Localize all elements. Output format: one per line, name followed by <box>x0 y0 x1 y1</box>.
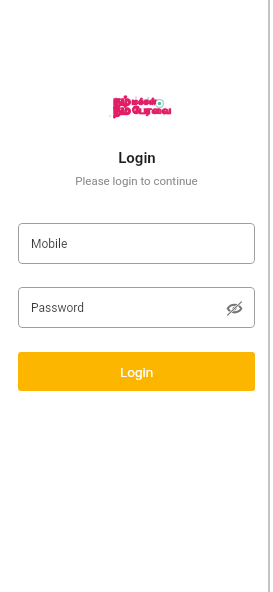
staticText: Login <box>120 364 154 380</box>
staticText: நம் <box>112 105 130 118</box>
staticText: மக்கள் <box>131 98 156 107</box>
staticText: நம் <box>113 104 131 117</box>
staticText: மக்கள் <box>132 97 157 106</box>
staticText: Login <box>118 149 156 167</box>
staticText: நம் <box>112 95 130 108</box>
staticText: Please login to continue <box>75 174 198 187</box>
staticText: Password <box>31 301 85 315</box>
staticText: பேரவை <box>131 105 170 116</box>
button[interactable]: Mobile <box>18 223 255 264</box>
button[interactable]: Password <box>18 287 255 328</box>
staticText: பேரவை <box>132 105 171 116</box>
button[interactable]: Login <box>18 352 255 391</box>
staticText: மக்கள் <box>131 97 156 106</box>
staticText: நம் <box>113 95 131 108</box>
staticText: Mobile <box>31 237 68 251</box>
staticText: நம் <box>112 104 130 117</box>
button[interactable]: Show password <box>224 298 244 318</box>
staticText: நம் <box>112 96 130 109</box>
